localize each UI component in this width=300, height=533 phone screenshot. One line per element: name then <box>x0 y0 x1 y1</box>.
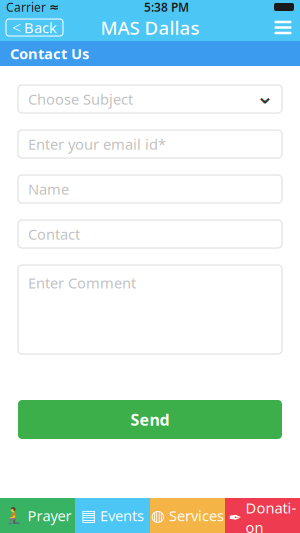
staticText: ⌄ <box>256 84 274 108</box>
button[interactable]: < <box>0 19 63 36</box>
staticText: Donation <box>245 498 296 533</box>
button[interactable]: 🧎 <box>0 498 75 533</box>
staticText: ≈ <box>49 0 59 14</box>
staticText: Carrier <box>6 0 46 15</box>
staticText: Prayer <box>27 506 71 525</box>
staticText: Enter Comment <box>28 273 136 292</box>
button[interactable]: Contact <box>18 220 282 248</box>
staticText: 🧎 <box>3 506 23 525</box>
button[interactable]: Name <box>18 175 282 203</box>
staticText: 5:38 PM <box>144 0 189 15</box>
staticText: Name <box>28 179 69 199</box>
staticText: MAS Dallas <box>100 15 199 40</box>
button[interactable]: ✒ <box>225 498 300 533</box>
staticText: ◍ <box>151 506 165 525</box>
staticText: Services <box>169 506 224 525</box>
staticText: Contact Us <box>10 44 89 63</box>
staticText: < <box>12 17 21 38</box>
staticText: ▤ <box>81 506 96 525</box>
button[interactable]: Enter Comment <box>18 265 282 354</box>
staticText: Contact <box>28 224 80 244</box>
staticText: Send <box>130 409 169 430</box>
button[interactable]: Menu <box>266 14 300 41</box>
button[interactable]: ▤ <box>75 498 150 533</box>
staticText: Events <box>100 506 144 525</box>
staticText: ✒ <box>228 508 241 527</box>
staticText: Enter your email id* <box>28 134 166 154</box>
button[interactable]: Choose Subject <box>18 85 282 113</box>
button[interactable]: Enter your email id* <box>18 130 282 158</box>
staticText: Back <box>24 18 57 37</box>
button[interactable]: Send <box>18 400 282 439</box>
button[interactable]: ◍ <box>150 498 225 533</box>
staticText: Choose Subject <box>28 89 133 109</box>
